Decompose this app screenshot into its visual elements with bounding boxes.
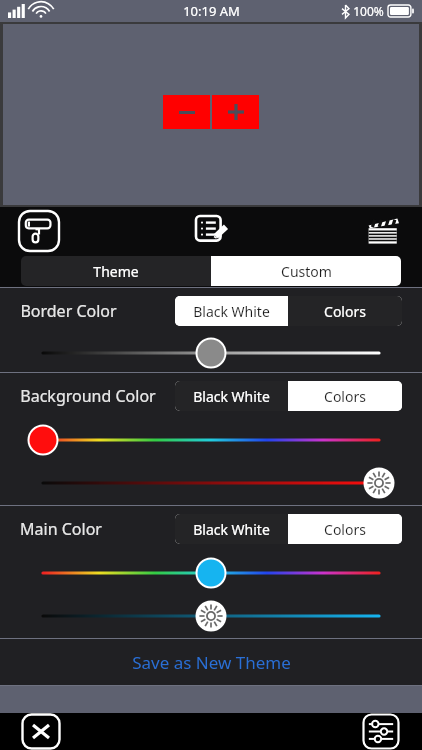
button[interactable]: Colors (288, 381, 402, 411)
staticText: Save as New Theme (132, 651, 291, 674)
button[interactable]: Colors (288, 296, 402, 326)
staticText: Colors (324, 387, 366, 406)
button[interactable]: Slider (43, 419, 379, 461)
button[interactable]: Movie (362, 210, 404, 252)
button[interactable]: Black White (175, 296, 288, 326)
button[interactable]: Save as New Theme (0, 639, 422, 685)
button[interactable]: Slider (43, 461, 379, 505)
button[interactable]: Edit list (191, 211, 231, 251)
staticText: 100% (353, 3, 384, 19)
button[interactable]: Decrease (163, 95, 210, 129)
button[interactable]: Slider (43, 334, 379, 372)
button[interactable]: Settings (360, 713, 402, 750)
button[interactable]: Custom (211, 256, 401, 286)
button[interactable]: Theme painter (17, 209, 61, 253)
staticText: Main Color (20, 518, 102, 540)
button[interactable]: Slider (43, 552, 379, 594)
staticText: Colors (324, 520, 366, 539)
staticText: Custom (281, 262, 332, 281)
staticText: Black White (193, 387, 270, 406)
button[interactable]: Increase (212, 95, 259, 129)
button[interactable]: Slider (43, 594, 379, 638)
staticText: Theme (93, 262, 139, 281)
staticText: Background Color (20, 385, 156, 407)
button[interactable]: Theme (21, 256, 211, 286)
staticText: 10:19 AM (183, 2, 240, 20)
staticText: Black White (193, 302, 270, 321)
button[interactable]: Colors (288, 514, 402, 544)
staticText: Colors (324, 302, 366, 321)
button[interactable]: Close (20, 713, 62, 750)
staticText: Border Color (20, 300, 117, 322)
button[interactable]: Black White (175, 514, 288, 544)
staticText: Black White (193, 520, 270, 539)
button[interactable]: Black White (175, 381, 288, 411)
